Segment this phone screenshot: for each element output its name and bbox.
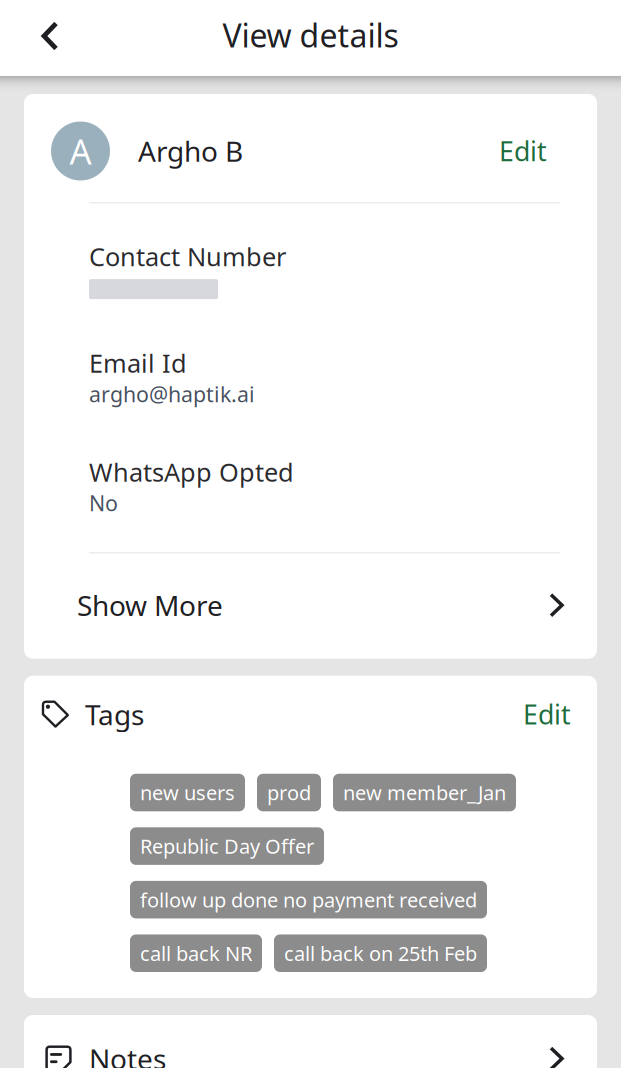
staticText: call back on 25th Feb [284, 940, 477, 966]
staticText: Contact Number [89, 239, 286, 273]
staticText: call back NR [140, 940, 252, 966]
button[interactable]: Show More [24, 554, 597, 659]
staticText: Notes [89, 1040, 166, 1068]
staticText: Edit [499, 133, 547, 169]
staticText: No [89, 489, 118, 517]
button[interactable]: Edit [523, 697, 571, 732]
staticText: Show More [77, 587, 223, 624]
staticText: WhatsApp Opted [89, 455, 294, 489]
staticText: Argho B [138, 132, 243, 170]
staticText: follow up done no payment received [140, 886, 477, 913]
staticText: argho@haptik.ai [89, 380, 255, 408]
staticText: View details [222, 14, 398, 56]
staticText: Email Id [89, 346, 187, 380]
button[interactable]: Notes [24, 1015, 597, 1068]
staticText: new member_Jan [343, 779, 506, 806]
staticText: A [69, 128, 91, 174]
staticText: new users [140, 779, 235, 806]
button[interactable]: Back [0, 5, 80, 70]
button[interactable]: Edit [499, 133, 547, 169]
staticText: prod [267, 779, 311, 806]
staticText: Tags [85, 696, 144, 733]
staticText: Edit [523, 697, 571, 732]
staticText: Republic Day Offer [140, 833, 314, 859]
